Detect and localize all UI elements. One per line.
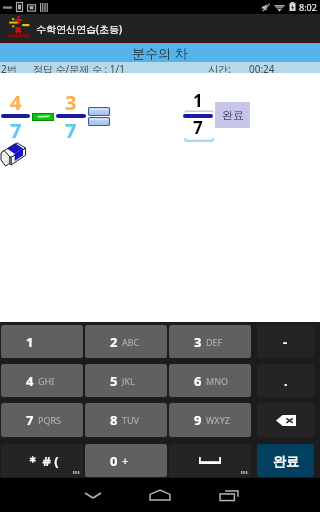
- staticText: 5: [110, 372, 118, 390]
- staticText: .: [284, 372, 288, 390]
- button[interactable]: 2: [85, 325, 167, 358]
- staticText: JKL: [122, 375, 135, 387]
- button[interactable]: 3: [169, 325, 251, 358]
- button[interactable]: 지우개: [0, 141, 28, 171]
- staticText: TUV: [122, 414, 139, 426]
- staticText: 7: [193, 116, 203, 139]
- staticText: 2: [110, 333, 118, 351]
- staticText: 3: [65, 89, 77, 116]
- staticText: 수학연산연습(초등): [36, 22, 122, 36]
- button[interactable]: 1: [1, 325, 83, 358]
- staticText: 시간:: [208, 62, 231, 73]
- staticText: 정답 수/문제 수 : 1/1: [33, 62, 125, 73]
- staticText: DEF: [206, 336, 223, 348]
- staticText: 완료: [222, 108, 244, 122]
- staticText: GHI: [38, 375, 55, 387]
- button[interactable]: 4: [1, 364, 83, 397]
- staticText: 7: [10, 117, 22, 144]
- button[interactable]: 6: [169, 364, 251, 397]
- staticText: WXYZ: [206, 414, 230, 426]
- button[interactable]: 홈: [130, 478, 190, 512]
- staticText: 7: [65, 117, 77, 144]
- button[interactable]: 키보드 닫기: [63, 478, 123, 512]
- staticText: 1: [193, 89, 203, 112]
- staticText: 00:24: [249, 62, 275, 73]
- other: 스페이스: [199, 457, 221, 464]
- staticText: +: [122, 453, 129, 468]
- staticText: PQRS: [38, 414, 62, 426]
- staticText: 8: [110, 411, 118, 429]
- button[interactable]: .: [257, 364, 314, 397]
- button[interactable]: 스페이스: [169, 444, 251, 477]
- staticText: ABC: [122, 336, 140, 348]
- button[interactable]: 8: [85, 403, 167, 437]
- button[interactable]: 0: [85, 444, 167, 477]
- button[interactable]: 지우기: [257, 403, 314, 437]
- staticText: 2번: [1, 62, 17, 73]
- other: 지우기: [276, 415, 296, 426]
- button[interactable]: 완료: [215, 102, 250, 128]
- staticText: 3: [194, 333, 202, 351]
- button[interactable]: 최근 앱: [199, 478, 259, 512]
- button[interactable]: 7: [1, 403, 83, 437]
- staticText: 8:02: [299, 1, 317, 13]
- staticText: 완료: [273, 453, 299, 469]
- staticText: 4: [10, 89, 22, 116]
- staticText: 0: [110, 452, 118, 470]
- staticText: MNO: [206, 375, 229, 387]
- staticText: 6: [194, 372, 202, 390]
- staticText: 4: [26, 372, 34, 390]
- button[interactable]: 완료: [257, 444, 314, 477]
- button[interactable]: 5: [85, 364, 167, 397]
- staticText: -: [283, 333, 288, 351]
- staticText: 1: [26, 333, 34, 351]
- staticText: 9: [194, 411, 202, 429]
- button[interactable]: -: [257, 325, 314, 358]
- button[interactable]: 9: [169, 403, 251, 437]
- staticText: 분수의 차: [132, 44, 188, 62]
- staticText: 7: [26, 411, 34, 429]
- button[interactable]: ＊ # (: [1, 444, 83, 477]
- staticText: ＊ # (: [26, 452, 59, 470]
